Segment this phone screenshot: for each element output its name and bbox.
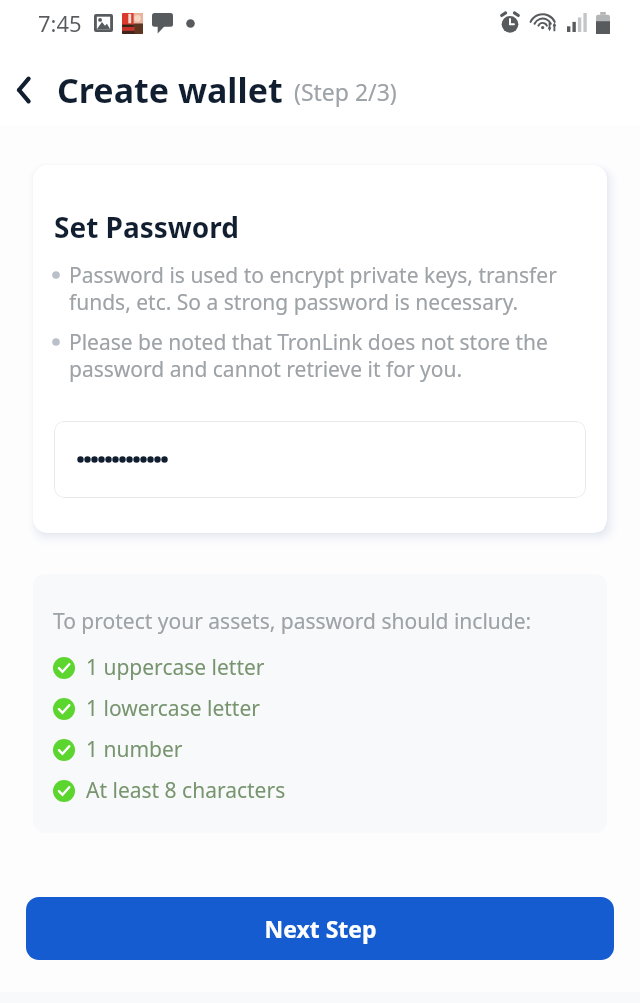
button[interactable]: Password input field bbox=[54, 421, 586, 498]
staticText: To protect your assets, password should … bbox=[53, 607, 532, 636]
staticText: (Step 2/3) bbox=[294, 76, 397, 107]
staticText: Set Password bbox=[54, 208, 239, 246]
staticText: Create wallet bbox=[57, 67, 283, 113]
staticText: At least 8 characters bbox=[86, 776, 286, 805]
staticText: 1 number bbox=[86, 735, 183, 764]
button[interactable]: Back bbox=[3, 68, 47, 112]
staticText: Next Step bbox=[264, 913, 377, 944]
staticText: Password is used to encrypt private keys… bbox=[69, 261, 586, 316]
staticText: 7:45 bbox=[38, 8, 82, 38]
staticText: 1 lowercase letter bbox=[86, 694, 260, 723]
staticText: Please be noted that TronLink does not s… bbox=[69, 328, 586, 383]
button[interactable]: Next Step bbox=[26, 897, 614, 960]
staticText: 1 uppercase letter bbox=[86, 653, 265, 682]
